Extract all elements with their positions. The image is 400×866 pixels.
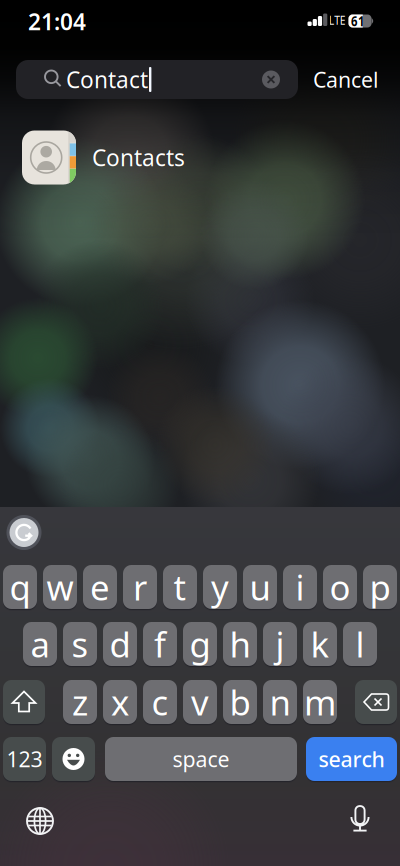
- staticText: 123: [6, 745, 42, 773]
- button[interactable]: v: [183, 680, 217, 724]
- button[interactable]: z: [63, 680, 97, 724]
- button[interactable]: c: [143, 680, 177, 724]
- button[interactable]: k: [303, 622, 337, 666]
- button[interactable]: q: [3, 565, 37, 609]
- button[interactable]: Next keyboard: [25, 806, 55, 836]
- staticText: c: [151, 679, 168, 725]
- button[interactable]: d: [103, 622, 137, 666]
- staticText: s: [71, 621, 88, 667]
- staticText: 61: [350, 12, 366, 30]
- button[interactable]: o: [323, 565, 357, 609]
- staticText: v: [191, 679, 209, 725]
- staticText: t: [173, 564, 186, 610]
- staticText: h: [229, 621, 250, 667]
- button[interactable]: f: [143, 622, 177, 666]
- button[interactable]: space: [105, 737, 297, 781]
- staticText: u: [249, 564, 270, 610]
- button[interactable]: 123: [3, 737, 46, 781]
- staticText: d: [109, 621, 130, 667]
- button[interactable]: n: [263, 680, 297, 724]
- staticText: f: [154, 621, 166, 667]
- button[interactable]: Shift: [3, 680, 45, 724]
- staticText: p: [369, 564, 390, 610]
- button[interactable]: w: [43, 565, 77, 609]
- staticText: w: [46, 564, 73, 610]
- staticText: m: [304, 679, 336, 725]
- staticText: Contacts: [92, 142, 185, 172]
- button[interactable]: g: [183, 622, 217, 666]
- button[interactable]: Cancel: [298, 64, 394, 94]
- button[interactable]: search: [306, 737, 397, 781]
- button[interactable]: r: [123, 565, 157, 609]
- staticText: k: [310, 621, 329, 667]
- staticText: Contact: [66, 64, 148, 94]
- staticText: space: [172, 745, 229, 773]
- button[interactable]: t: [163, 565, 197, 609]
- staticText: i: [295, 564, 304, 610]
- staticText: y: [211, 564, 229, 610]
- button[interactable]: Contacts: [11, 119, 391, 195]
- staticText: n: [269, 679, 290, 725]
- staticText: z: [72, 679, 88, 725]
- button[interactable]: Grammarly: [6, 514, 42, 550]
- staticText: l: [355, 621, 364, 667]
- button[interactable]: u: [243, 565, 277, 609]
- button[interactable]: Delete: [355, 680, 397, 724]
- staticText: search: [318, 745, 384, 773]
- staticText: o: [329, 564, 350, 610]
- staticText: Cancel: [313, 65, 379, 94]
- staticText: LTE: [326, 11, 347, 28]
- button[interactable]: p: [363, 565, 397, 609]
- button[interactable]: s: [63, 622, 97, 666]
- staticText: e: [90, 564, 110, 610]
- button[interactable]: m: [303, 680, 337, 724]
- button[interactable]: j: [263, 622, 297, 666]
- button[interactable]: h: [223, 622, 257, 666]
- button[interactable]: e: [83, 565, 117, 609]
- staticText: r: [133, 564, 147, 610]
- button[interactable]: Clear text: [260, 68, 282, 90]
- button[interactable]: a: [23, 622, 57, 666]
- staticText: 21:04: [28, 6, 86, 36]
- button[interactable]: l: [343, 622, 377, 666]
- staticText: g: [189, 621, 210, 667]
- staticText: a: [30, 621, 49, 667]
- staticText: j: [275, 621, 284, 667]
- button[interactable]: Dictate: [347, 804, 373, 840]
- staticText: q: [9, 564, 30, 610]
- button[interactable]: b: [223, 680, 257, 724]
- button[interactable]: i: [283, 565, 317, 609]
- button[interactable]: y: [203, 565, 237, 609]
- staticText: b: [229, 679, 250, 725]
- button[interactable]: x: [103, 680, 137, 724]
- staticText: x: [111, 679, 129, 725]
- button[interactable]: Emoji: [52, 737, 95, 781]
